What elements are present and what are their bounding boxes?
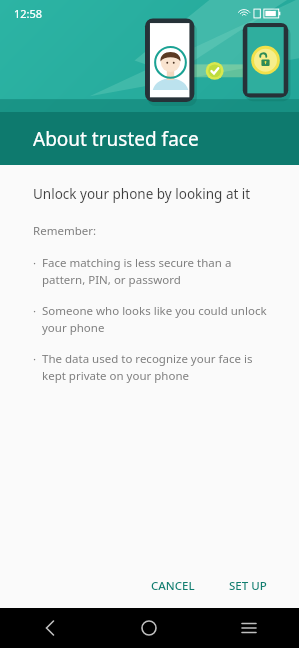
button[interactable]: SET UP bbox=[217, 570, 279, 602]
staticText: CANCEL bbox=[151, 578, 195, 594]
staticText: About trusted face bbox=[33, 126, 199, 152]
staticText: · bbox=[33, 303, 42, 319]
button[interactable]: Home bbox=[99, 608, 199, 648]
staticText: · bbox=[33, 351, 42, 367]
staticText: Face matching is less secure than a patt… bbox=[42, 255, 275, 287]
staticText: Unlock your phone by looking at it bbox=[33, 185, 251, 203]
staticText: Someone who looks like you could unlock … bbox=[42, 303, 275, 335]
staticText: 12:58 bbox=[14, 6, 43, 21]
staticText: · bbox=[33, 255, 42, 271]
button[interactable]: Back bbox=[0, 608, 99, 648]
staticText: The data used to recognize your face is … bbox=[42, 351, 275, 383]
staticText: SET UP bbox=[229, 578, 267, 594]
staticText: Remember: bbox=[33, 223, 97, 239]
button[interactable]: Recents bbox=[199, 608, 299, 648]
button[interactable]: CANCEL bbox=[139, 570, 207, 602]
